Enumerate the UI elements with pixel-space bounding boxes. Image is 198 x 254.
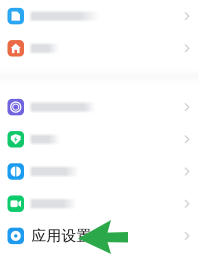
button[interactable]: Setting	[0, 32, 198, 64]
staticText: 应用设置	[31, 227, 91, 245]
button[interactable]: Setting	[0, 123, 198, 155]
button[interactable]: 应用设置	[0, 220, 198, 252]
button[interactable]: Setting	[0, 188, 198, 220]
button[interactable]: Setting	[0, 0, 198, 32]
button[interactable]: Setting	[0, 91, 198, 123]
button[interactable]: Setting	[0, 155, 198, 188]
